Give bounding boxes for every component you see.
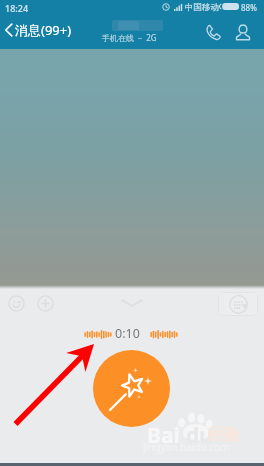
staticText: Bai <box>147 421 180 450</box>
staticText: 中国移动 <box>185 2 219 13</box>
button[interactable]: Voice changer <box>93 350 170 427</box>
staticText: 消息(99+) <box>15 21 72 39</box>
staticText: jingyan.baidu.com <box>143 440 230 454</box>
button[interactable]: Add <box>33 289 58 317</box>
staticText: 手机在线 － 2G <box>102 32 157 43</box>
staticText: 18:24 <box>5 2 29 14</box>
staticText: du <box>186 421 213 450</box>
staticText: 88% <box>241 2 257 13</box>
button[interactable]: Keyboard <box>218 292 258 316</box>
button[interactable]: Profile <box>231 18 255 46</box>
staticText: 经验 <box>208 425 240 445</box>
button[interactable]: 消息(99+) <box>3 21 72 39</box>
staticText: 0:10 <box>115 325 140 342</box>
button[interactable]: Call <box>202 18 225 46</box>
button[interactable]: Emoji <box>4 289 29 317</box>
